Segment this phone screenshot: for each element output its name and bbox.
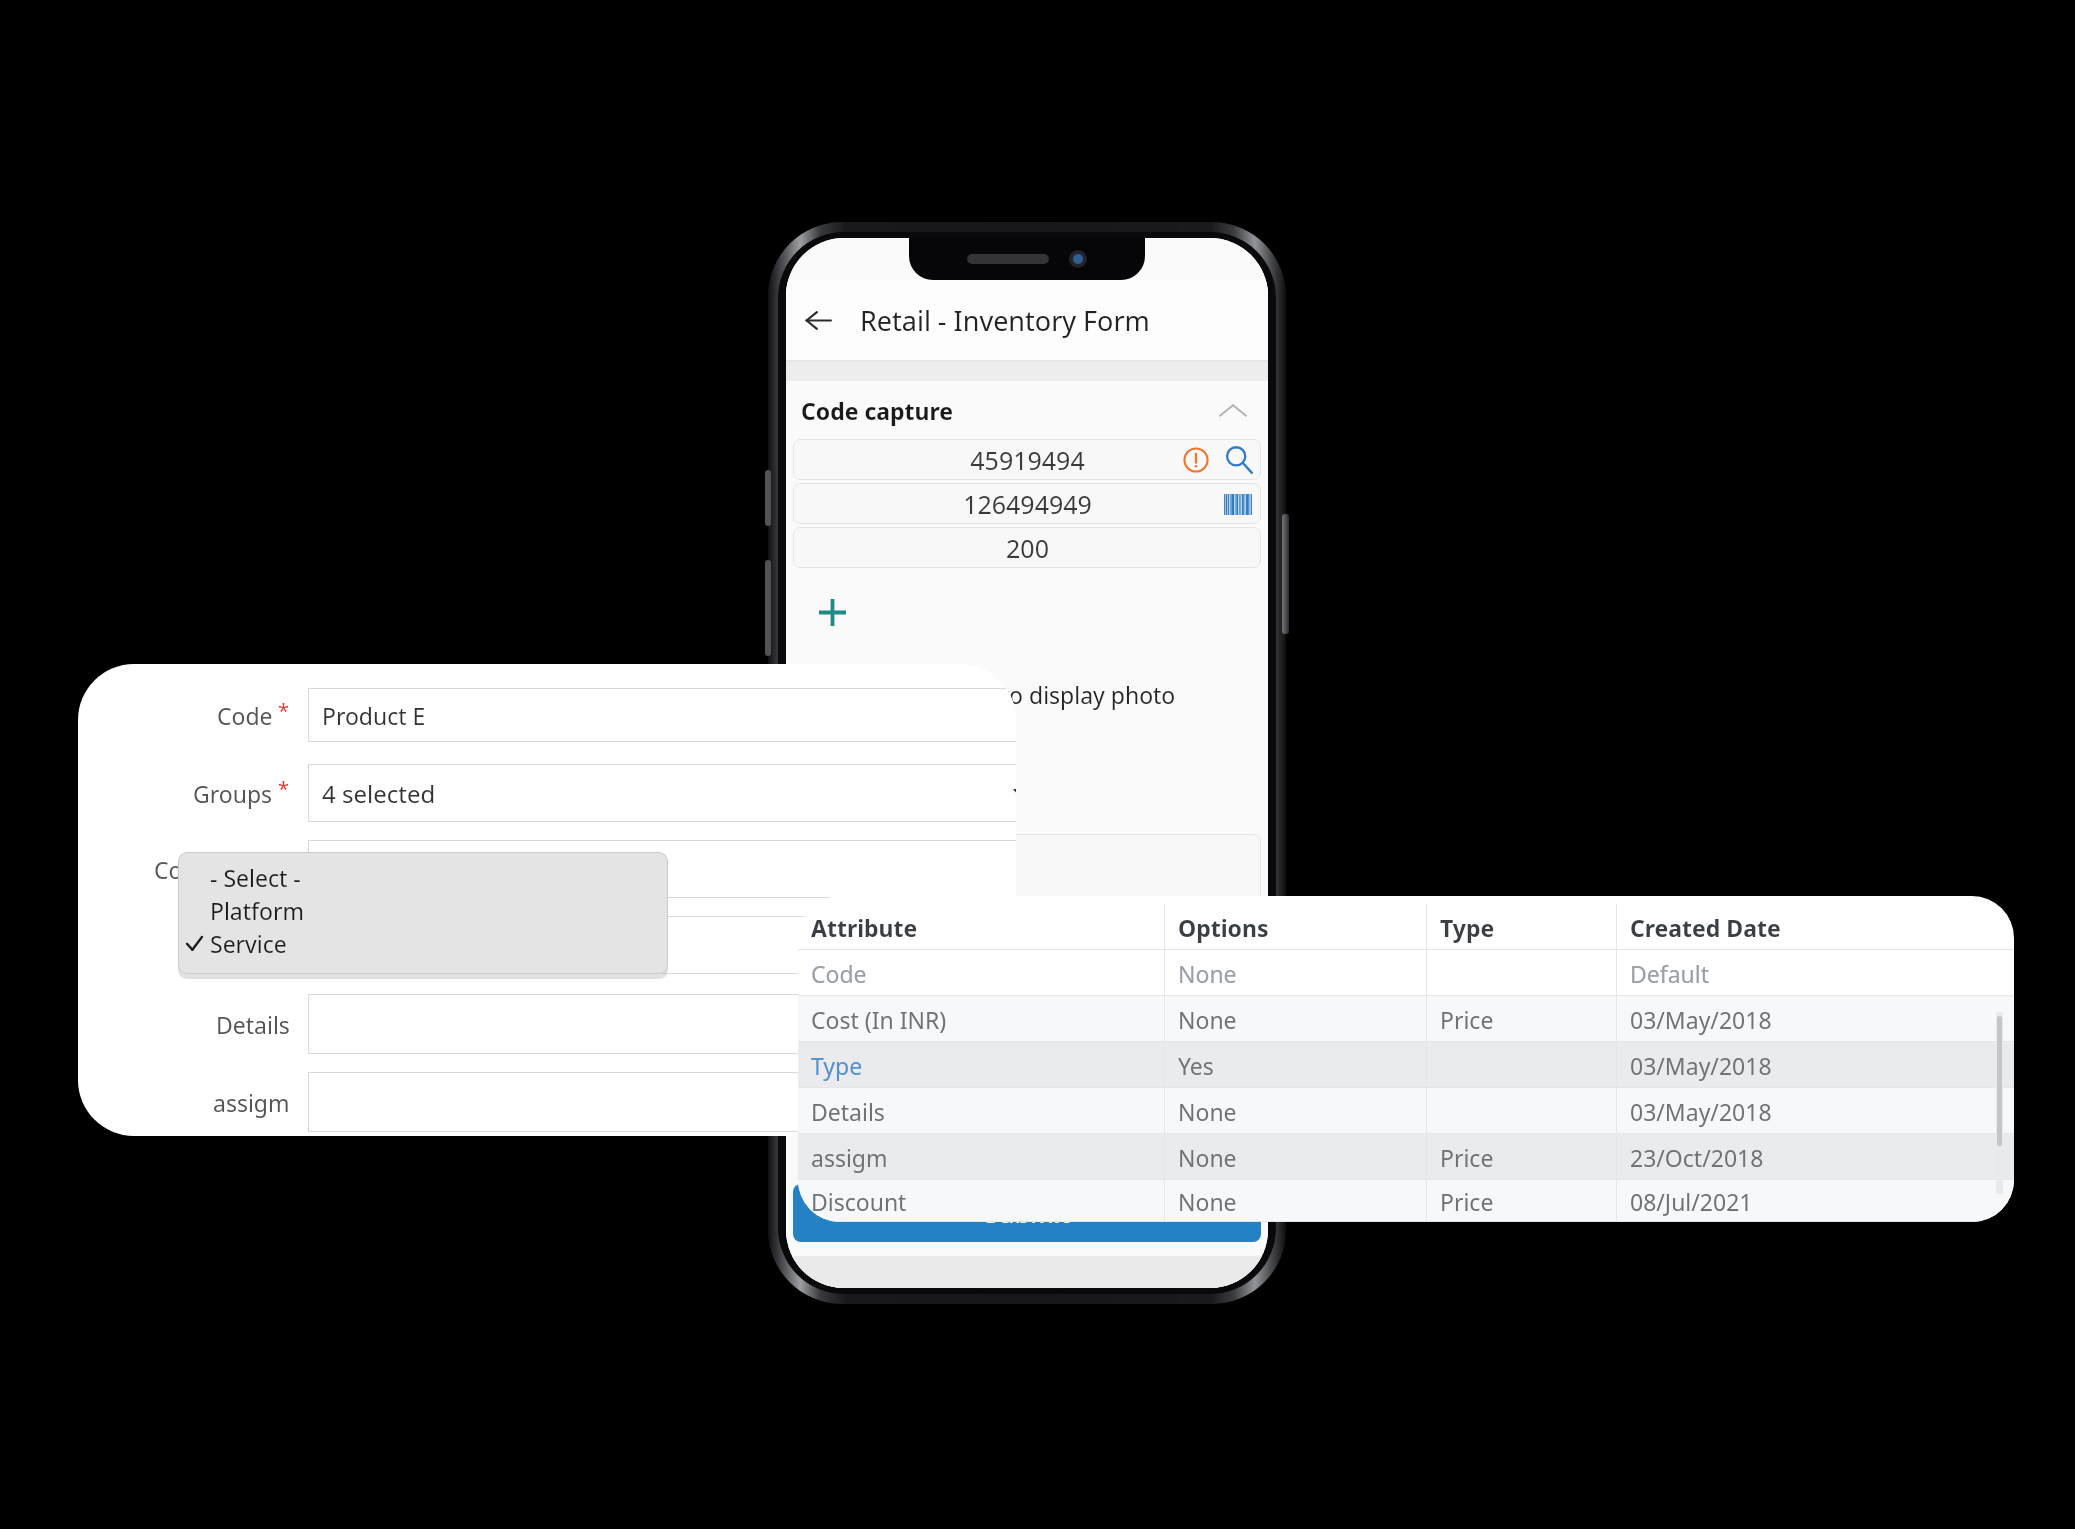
button[interactable]: - Select - [178,861,668,894]
button[interactable]: Back [786,280,1268,360]
button[interactable]: Submit [793,1184,1261,1242]
button[interactable]: 45919494 [793,439,1261,480]
button[interactable]: Platform [178,894,668,927]
staticText: Enter code to display photo [879,679,1176,710]
staticText: 200 [1006,531,1049,565]
button[interactable]: assigm [798,1134,2014,1180]
staticText: Code [811,958,867,989]
button[interactable]: Details [798,1088,2014,1134]
button[interactable]: Code [798,950,2014,996]
button[interactable] [308,916,1016,974]
staticText: Details [216,1009,290,1040]
staticText: - Select - [210,862,301,893]
button[interactable]: Scan barcode [1221,487,1255,521]
staticText: assigm [811,1142,888,1173]
staticText: 23/Oct/2018 [1630,1142,1764,1173]
staticText: * [278,775,290,802]
staticText: Retail - Inventory Form [860,302,1150,339]
staticText: Options [1178,912,1269,943]
staticText: Type [811,1050,863,1081]
staticText: Code [217,700,273,731]
staticText: None [1178,1096,1237,1127]
staticText: Price [1440,1004,1494,1035]
staticText: assigm [213,1087,290,1118]
staticText: 03/May/2018 [1630,1004,1772,1035]
staticText: 03/May/2018 [1630,1096,1772,1127]
button[interactable]: Cost (In INR) [798,996,2014,1042]
staticText: Details [811,1096,885,1127]
button[interactable]: Code capture [786,381,1268,439]
staticText: Price [1440,1186,1494,1217]
staticText: Platform [210,895,304,926]
staticText: Code capture [801,395,954,426]
staticText: Product E [322,700,426,731]
staticText: 08/Jul/2021 [1630,1186,1753,1217]
staticText: Submit [985,1196,1070,1230]
staticText: None [1178,1186,1237,1217]
staticText: 126494949 [963,487,1092,521]
button[interactable]: Product E [308,688,1016,742]
staticText: Type [238,930,290,961]
staticText: Discount [811,1186,907,1217]
button[interactable]: Service [178,927,668,960]
button[interactable]: Search [1223,444,1255,476]
staticText: Type [1440,912,1495,943]
staticText: Service [210,928,287,959]
button[interactable]: Warning [1181,445,1211,475]
staticText: Groups [193,778,273,809]
button[interactable] [308,840,1016,898]
staticText: Price [1440,1142,1494,1173]
staticText: 45919494 [970,443,1085,477]
staticText: Cost (In INR) [154,854,290,885]
button[interactable]: Enter place [793,834,1261,902]
button[interactable] [308,1072,1016,1132]
staticText: Attribute [811,912,918,943]
staticText: 4 selected [322,777,436,810]
staticText: Yes [1178,1050,1214,1081]
button[interactable]: Collapse section [1212,389,1254,431]
button[interactable] [308,994,1016,1054]
button[interactable]: Back [792,294,844,346]
button[interactable]: 200 [793,527,1261,568]
staticText: Default [1630,958,1710,989]
button[interactable]: Add code [808,588,856,636]
staticText: None [1178,958,1237,989]
staticText: Created Date [1630,912,1781,943]
staticText: None [1178,1142,1237,1173]
button[interactable]: 126494949 [793,483,1261,524]
staticText: 03/May/2018 [1630,1050,1772,1081]
staticText: * [278,697,290,724]
button[interactable]: 4 selected [308,764,1016,822]
staticText: Cost (In INR) [811,1004,947,1035]
button[interactable]: Discount [798,1180,2014,1222]
button[interactable]: Type [798,1042,2014,1088]
staticText: None [1178,1004,1237,1035]
